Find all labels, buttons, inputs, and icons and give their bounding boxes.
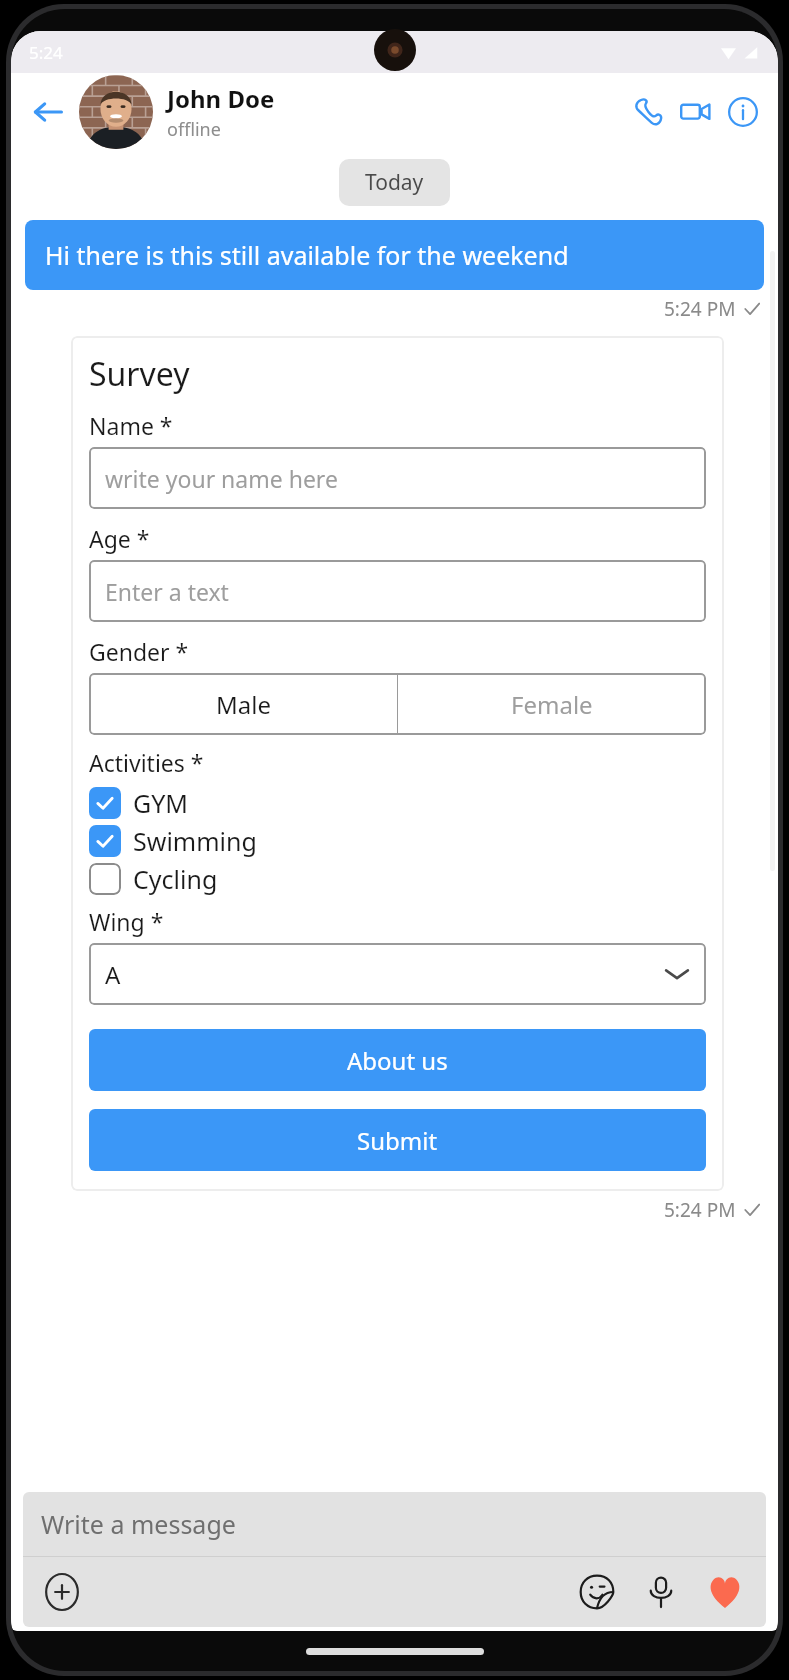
staticText: GYM — [133, 786, 189, 820]
staticText: Write a message — [41, 1507, 236, 1541]
staticText: Activities * — [89, 747, 204, 778]
staticText: Swimming — [133, 824, 257, 858]
staticText: offline — [167, 117, 221, 142]
button[interactable]: Add attachment — [39, 1569, 85, 1615]
staticText: Enter a text — [105, 576, 229, 607]
staticText: About us — [347, 1044, 448, 1077]
staticText: 5:24 PM — [664, 296, 736, 322]
button[interactable]: Write a message — [23, 1492, 766, 1556]
button[interactable]: A — [89, 943, 706, 1005]
staticText: write your name here — [105, 463, 338, 494]
button[interactable]: About us — [89, 1029, 706, 1091]
button[interactable]: Video call — [674, 91, 716, 133]
button[interactable]: Swimming — [89, 822, 706, 860]
button[interactable]: Female — [398, 673, 706, 735]
staticText: Name * — [89, 410, 173, 441]
button[interactable]: Hi there is this still available for the… — [25, 220, 764, 290]
staticText: Submit — [357, 1124, 438, 1157]
button[interactable]: Enter a text — [89, 560, 706, 622]
staticText: 5:24 PM — [664, 1197, 736, 1223]
staticText: Male — [216, 688, 271, 721]
button[interactable]: Submit — [89, 1109, 706, 1171]
staticText: John Doe — [167, 82, 275, 115]
staticText: Wing * — [89, 906, 164, 937]
staticText: Age * — [89, 523, 150, 554]
staticText: Female — [511, 688, 593, 721]
staticText: Gender * — [89, 636, 189, 667]
button[interactable]: Back — [25, 89, 71, 135]
button[interactable]: Stickers — [572, 1567, 622, 1617]
button[interactable]: Call — [626, 91, 668, 133]
staticText: Today — [365, 168, 424, 197]
button[interactable]: Send like — [700, 1567, 750, 1617]
staticText: Survey — [89, 352, 190, 396]
staticText: Hi there is this still available for the… — [45, 238, 569, 272]
button[interactable]: write your name here — [89, 447, 706, 509]
button[interactable]: GYM — [89, 784, 706, 822]
staticText: A — [105, 958, 664, 991]
button[interactable]: Profile photo — [79, 75, 153, 149]
button[interactable]: Cycling — [89, 860, 706, 898]
button[interactable]: Male — [89, 673, 397, 735]
staticText: 5:24 — [29, 41, 63, 64]
button[interactable]: Voice message — [636, 1567, 686, 1617]
button[interactable]: Info — [722, 91, 764, 133]
staticText: Cycling — [133, 862, 218, 896]
button[interactable]: Today — [339, 159, 450, 206]
